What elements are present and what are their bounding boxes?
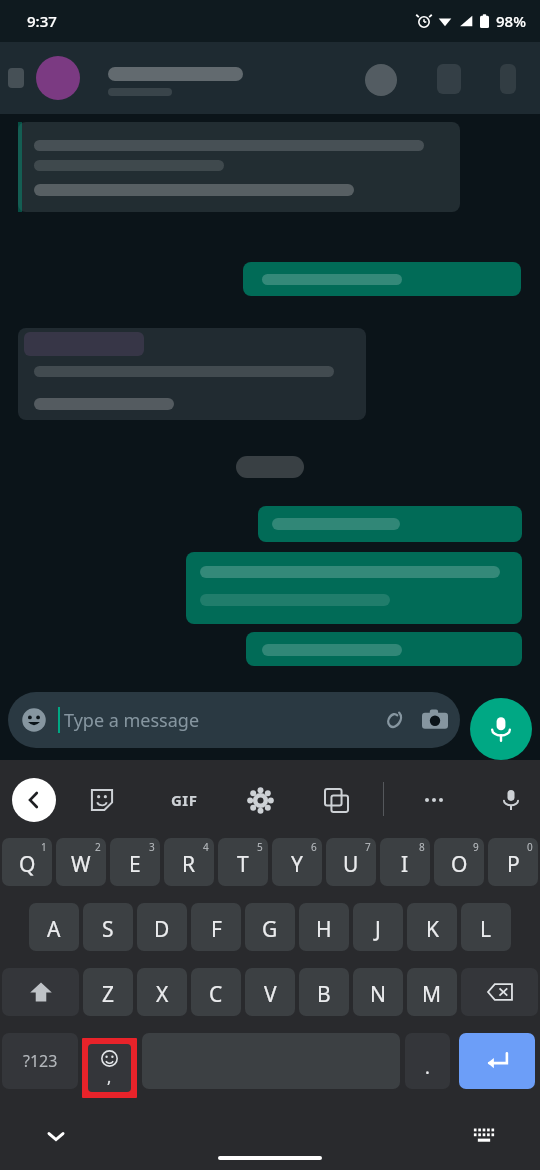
button[interactable]: . — [405, 1033, 450, 1089]
button[interactable]: R — [164, 838, 214, 886]
button[interactable]: Back — [12, 778, 56, 822]
button[interactable]: Voice input — [495, 784, 527, 816]
button[interactable]: Switch keyboard — [464, 1116, 504, 1156]
button[interactable]: ?123 — [2, 1033, 78, 1089]
staticText: A — [47, 915, 61, 944]
staticText: O — [451, 850, 468, 879]
button[interactable]: Stickers — [86, 784, 118, 816]
button[interactable]: Shift — [2, 968, 79, 1016]
staticText: 2 — [95, 840, 101, 854]
staticText: P — [507, 850, 520, 879]
staticText: S — [102, 915, 114, 944]
button[interactable]: Voice message — [470, 698, 532, 760]
button[interactable]: Attach — [380, 707, 406, 733]
staticText: 8 — [419, 840, 425, 854]
button[interactable]: B — [299, 968, 349, 1016]
button[interactable]: U — [326, 838, 376, 886]
button[interactable]: K — [407, 903, 457, 951]
staticText: D — [154, 915, 170, 944]
staticText: Z — [102, 980, 115, 1009]
button[interactable]: More options — [418, 784, 450, 816]
staticText: G — [262, 915, 278, 944]
staticText: 3 — [149, 840, 155, 854]
staticText: X — [156, 980, 169, 1009]
button[interactable]: Chat header — [0, 42, 540, 114]
button[interactable]: G — [245, 903, 295, 951]
button[interactable]: E — [110, 838, 160, 886]
button[interactable]: A — [29, 903, 79, 951]
button[interactable]: Translate — [320, 784, 352, 816]
staticText: 5 — [257, 840, 263, 854]
staticText: B — [317, 980, 331, 1009]
staticText: R — [182, 850, 196, 879]
button[interactable]: Emoji — [20, 706, 48, 734]
staticText: E — [129, 850, 141, 879]
button[interactable]: D — [137, 903, 187, 951]
staticText: 9 — [473, 840, 479, 854]
button[interactable]: Settings — [244, 784, 276, 816]
button[interactable]: F — [191, 903, 241, 951]
staticText: V — [264, 980, 277, 1009]
staticText: Q — [19, 850, 36, 879]
staticText: 6 — [311, 840, 317, 854]
button[interactable]: P — [488, 838, 538, 886]
button[interactable]: Camera — [422, 707, 448, 733]
staticText: L — [480, 915, 492, 944]
button[interactable]: L — [461, 903, 511, 951]
staticText: 0 — [527, 840, 533, 854]
button[interactable]: M — [407, 968, 457, 1016]
staticText: Y — [291, 850, 303, 879]
button[interactable]: I — [380, 838, 430, 886]
staticText: . — [425, 1055, 430, 1080]
button[interactable]: J — [353, 903, 403, 951]
staticText: 1 — [41, 840, 47, 854]
button[interactable]: W — [56, 838, 106, 886]
staticText: T — [237, 850, 249, 879]
button[interactable]: Enter — [459, 1033, 535, 1089]
button[interactable]: Q — [2, 838, 52, 886]
button[interactable]: Emoji keyboard — [88, 1044, 131, 1092]
staticText: 9:37 — [27, 11, 57, 31]
button[interactable]: H — [299, 903, 349, 951]
staticText: 7 — [365, 840, 371, 854]
staticText: H — [316, 915, 332, 944]
staticText: W — [71, 850, 91, 879]
staticText: GIF — [171, 790, 198, 810]
button[interactable]: X — [137, 968, 187, 1016]
staticText: K — [426, 915, 439, 944]
staticText: M — [422, 980, 442, 1009]
staticText: , — [107, 1066, 112, 1088]
staticText: ?123 — [23, 1050, 58, 1072]
staticText: J — [375, 915, 381, 944]
staticText: C — [209, 980, 223, 1009]
button[interactable]: Backspace — [461, 968, 538, 1016]
staticText: 4 — [203, 840, 209, 854]
button[interactable]: C — [191, 968, 241, 1016]
staticText: I — [401, 850, 409, 879]
button[interactable]: Hide keyboard — [36, 1116, 76, 1156]
staticText: Type a message — [64, 708, 380, 733]
staticText: N — [370, 980, 386, 1009]
staticText: U — [343, 850, 359, 879]
button[interactable]: O — [434, 838, 484, 886]
staticText: F — [211, 915, 222, 944]
button[interactable]: V — [245, 968, 295, 1016]
button[interactable]: T — [218, 838, 268, 886]
button[interactable]: N — [353, 968, 403, 1016]
button[interactable]: Z — [83, 968, 133, 1016]
button[interactable]: S — [83, 903, 133, 951]
button[interactable]: Y — [272, 838, 322, 886]
button[interactable]: Emoji — [8, 692, 460, 748]
staticText: 98% — [496, 11, 526, 31]
button[interactable]: GIF — [162, 784, 206, 816]
